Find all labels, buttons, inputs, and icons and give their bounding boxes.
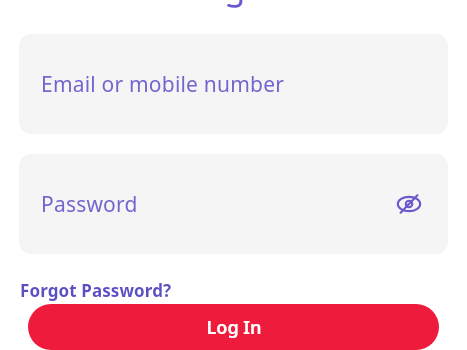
button[interactable]: Forgot Password?	[19, 277, 173, 304]
staticText: Forgot Password?	[20, 279, 172, 302]
button[interactable]: Show password	[392, 187, 426, 221]
staticText: Email or mobile number	[41, 70, 285, 99]
button[interactable]: Password	[19, 154, 448, 254]
button[interactable]: Email or mobile number	[19, 34, 448, 134]
staticText: Log In	[206, 315, 262, 340]
button[interactable]: Log In	[28, 304, 439, 350]
staticText: Password	[41, 190, 138, 219]
